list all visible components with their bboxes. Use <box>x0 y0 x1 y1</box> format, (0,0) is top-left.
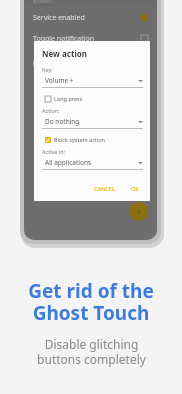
button[interactable]: All applications <box>42 158 143 170</box>
button[interactable]: Block system action <box>42 136 143 143</box>
button[interactable]: Long press <box>42 95 143 102</box>
staticText: All applications <box>45 158 92 167</box>
button[interactable]: Service enabled <box>24 7 157 28</box>
staticText: SETTINGS <box>33 0 52 4</box>
staticText: Block system action <box>54 136 105 143</box>
button[interactable]: Volume + <box>42 76 143 88</box>
button[interactable]: Do nothing <box>42 117 143 129</box>
staticText: Disable glitching buttons completely <box>37 336 146 367</box>
staticText: Toggle notification <box>33 34 95 44</box>
staticText: Get rid of the Ghost Touch <box>28 278 154 326</box>
button[interactable]: Toggle notification <box>24 28 157 49</box>
button[interactable]: Add new action <box>129 202 148 221</box>
staticText: Action: <box>42 107 60 114</box>
staticText: New action <box>42 48 88 59</box>
button[interactable]: CANCEL <box>90 182 119 195</box>
staticText: Long press <box>54 95 83 102</box>
staticText: OK <box>131 185 139 192</box>
button[interactable]: OK <box>127 182 143 195</box>
button[interactable]: B <box>24 53 157 74</box>
staticText: Do nothing <box>45 117 80 126</box>
staticText: CANCEL <box>94 185 115 192</box>
staticText: Active in: <box>42 148 66 155</box>
staticText: Service enabled <box>33 13 85 23</box>
staticText: Volume + <box>45 76 74 85</box>
staticText: Key: <box>42 66 53 73</box>
staticText: B <box>33 59 38 69</box>
